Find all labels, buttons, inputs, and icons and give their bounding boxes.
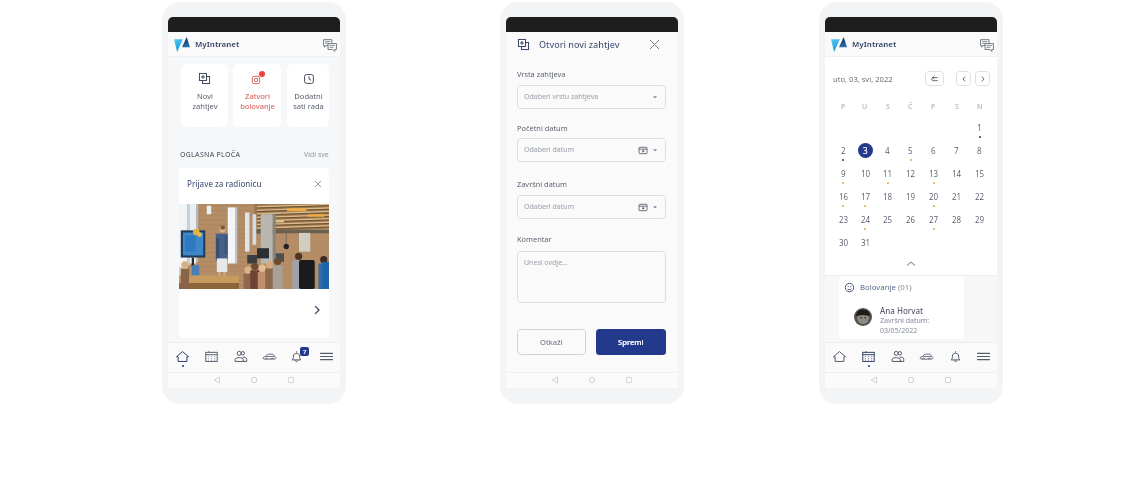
button[interactable]: Unesi ovdje... bbox=[517, 251, 666, 303]
button[interactable]: Spremi bbox=[596, 329, 666, 355]
staticText: Vidi sve bbox=[304, 150, 329, 160]
button[interactable]: Odaberi vrstu zahtjeva bbox=[517, 85, 666, 109]
staticText: 03/05/2022 bbox=[880, 326, 918, 336]
button[interactable]: 22 bbox=[972, 189, 987, 204]
button[interactable]: People bbox=[226, 342, 255, 372]
staticText: Završni datum bbox=[517, 179, 567, 189]
button[interactable]: Collapse bbox=[825, 257, 997, 271]
button[interactable]: 10 bbox=[858, 166, 873, 181]
staticText: 20 bbox=[929, 191, 939, 202]
staticText: 3 bbox=[863, 145, 868, 156]
staticText: 1 bbox=[977, 122, 982, 133]
button[interactable]: Previous bbox=[956, 71, 971, 86]
staticText: 18 bbox=[883, 191, 893, 202]
button[interactable]: 26 bbox=[903, 212, 918, 227]
button[interactable]: Home bbox=[168, 342, 197, 372]
staticText: 10 bbox=[861, 168, 871, 179]
button[interactable]: 21 bbox=[949, 189, 964, 204]
staticText: Otkaži bbox=[540, 337, 563, 347]
button[interactable]: 24 bbox=[858, 212, 873, 227]
staticText: MyIntranet bbox=[195, 39, 240, 50]
staticText: 28 bbox=[952, 214, 962, 225]
staticText: MyIntranet bbox=[852, 39, 897, 50]
button[interactable]: 14 bbox=[949, 166, 964, 181]
button[interactable]: 12 bbox=[903, 166, 918, 181]
button[interactable]: 18 bbox=[880, 189, 895, 204]
button[interactable]: Menu bbox=[313, 342, 340, 372]
button[interactable]: Messages bbox=[979, 37, 995, 53]
button[interactable]: 9 bbox=[836, 166, 851, 181]
button[interactable]: 27 bbox=[926, 212, 941, 227]
staticText: 27 bbox=[929, 214, 939, 225]
button[interactable]: 29 bbox=[972, 212, 987, 227]
staticText: 31 bbox=[861, 237, 871, 248]
staticText: Početni datum bbox=[517, 123, 568, 133]
button[interactable]: 11 bbox=[880, 166, 895, 181]
staticText: Prijave za radionicu bbox=[187, 178, 262, 189]
button[interactable]: 23 bbox=[836, 212, 851, 227]
button[interactable]: Dodatni sati rada bbox=[287, 64, 329, 127]
button[interactable]: 28 bbox=[949, 212, 964, 227]
staticText: Odaberi vrstu zahtjeva bbox=[524, 92, 599, 102]
button[interactable]: 25 bbox=[880, 212, 895, 227]
staticText: 21 bbox=[952, 191, 962, 202]
staticText: Odaberi datum bbox=[524, 202, 575, 212]
button[interactable]: Odaberi datum bbox=[517, 138, 666, 162]
staticText: P bbox=[931, 102, 936, 112]
staticText: Vrsta zahtjeva bbox=[517, 69, 566, 79]
button[interactable]: 31 bbox=[858, 235, 873, 250]
staticText: U bbox=[862, 102, 868, 112]
staticText: Završni datum: bbox=[880, 316, 930, 326]
button[interactable]: Vehicles bbox=[912, 342, 941, 372]
button[interactable]: Messages bbox=[322, 37, 338, 53]
staticText: (01) bbox=[898, 282, 912, 293]
button[interactable]: 8 bbox=[972, 143, 987, 158]
button[interactable]: Notifications bbox=[284, 342, 313, 372]
button[interactable]: 3 bbox=[858, 143, 873, 158]
staticText: Bolovanje bbox=[860, 282, 896, 293]
button[interactable]: 19 bbox=[903, 189, 918, 204]
button[interactable]: 7 bbox=[949, 143, 964, 158]
staticText: 12 bbox=[906, 168, 916, 179]
staticText: 14 bbox=[952, 168, 962, 179]
button[interactable]: 4 bbox=[880, 143, 895, 158]
button[interactable]: 6 bbox=[926, 143, 941, 158]
staticText: 7 bbox=[954, 145, 959, 156]
button[interactable]: 17 bbox=[858, 189, 873, 204]
button[interactable]: People bbox=[883, 342, 912, 372]
button[interactable]: 16 bbox=[836, 189, 851, 204]
staticText: 30 bbox=[839, 237, 849, 248]
button[interactable]: Menu bbox=[970, 342, 997, 372]
button[interactable]: 30 bbox=[836, 235, 851, 250]
button[interactable]: Next bbox=[975, 71, 990, 86]
staticText: 11 bbox=[883, 168, 893, 179]
button[interactable]: Notifications bbox=[941, 342, 970, 372]
button[interactable]: Zatvori bolovanje bbox=[233, 64, 281, 127]
button[interactable]: 2 bbox=[836, 143, 851, 158]
button[interactable]: Next bbox=[311, 304, 323, 316]
button[interactable]: Otkaži bbox=[517, 329, 586, 355]
staticText: 23 bbox=[839, 214, 849, 225]
button[interactable]: Vehicles bbox=[255, 342, 284, 372]
button[interactable]: Odaberi datum bbox=[517, 195, 666, 219]
button[interactable]: Home bbox=[825, 342, 854, 372]
staticText: 17 bbox=[861, 191, 871, 202]
staticText: 25 bbox=[883, 214, 893, 225]
staticText: 26 bbox=[906, 214, 916, 225]
staticText: Zatvori bolovanje bbox=[240, 91, 275, 111]
staticText: Spremi bbox=[618, 337, 644, 347]
button[interactable]: 1 bbox=[972, 120, 987, 135]
button[interactable]: Calendar bbox=[197, 342, 226, 372]
staticText: Ana Horvat bbox=[880, 305, 924, 316]
button[interactable]: 20 bbox=[926, 189, 941, 204]
button[interactable]: Novi zahtjev bbox=[181, 64, 228, 127]
button[interactable]: Calendar bbox=[854, 342, 883, 372]
button[interactable]: Vidi sve bbox=[304, 150, 329, 160]
button[interactable]: 15 bbox=[972, 166, 987, 181]
button[interactable]: Today bbox=[925, 71, 944, 86]
button[interactable]: Close bbox=[647, 37, 661, 51]
staticText: Komentar bbox=[517, 234, 552, 244]
button[interactable]: Close bbox=[312, 178, 323, 189]
button[interactable]: 13 bbox=[926, 166, 941, 181]
button[interactable]: 5 bbox=[903, 143, 918, 158]
